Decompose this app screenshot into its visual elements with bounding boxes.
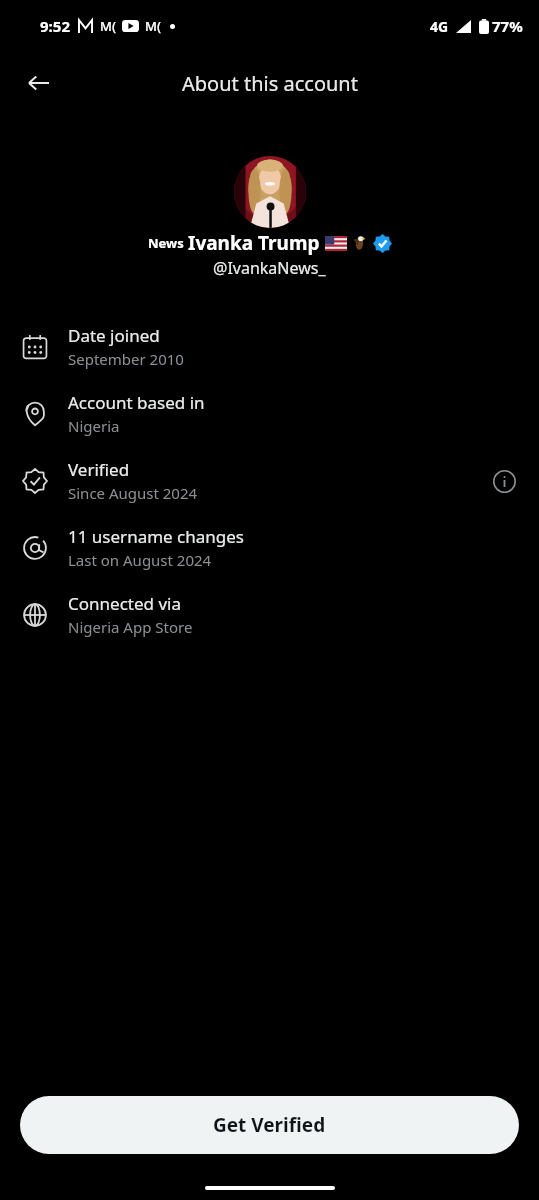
staticText: Account based in: [68, 391, 205, 414]
staticText: M(: [100, 17, 116, 35]
staticText: Nigeria: [68, 416, 120, 436]
button[interactable]: Connected via: [0, 592, 539, 659]
staticText: Get Verified: [213, 1112, 326, 1138]
staticText: 4G: [430, 17, 449, 36]
button[interactable]: Verified: [0, 458, 539, 525]
staticText: News: [148, 234, 184, 252]
staticText: 9:52: [40, 16, 70, 36]
staticText: About this account: [182, 70, 358, 97]
staticText: Connected via: [68, 592, 181, 615]
button[interactable]: Back: [14, 59, 62, 107]
button[interactable]: More info about verification: [487, 464, 521, 498]
button[interactable]: Date joined: [0, 324, 539, 391]
staticText: Since August 2024: [68, 483, 198, 503]
button[interactable]: Get Verified: [20, 1096, 519, 1154]
staticText: M(: [145, 17, 161, 35]
staticText: Nigeria App Store: [68, 617, 193, 637]
button[interactable]: 11 username changes: [0, 525, 539, 592]
staticText: Last on August 2024: [68, 550, 212, 570]
staticText: 77%: [492, 16, 523, 36]
staticText: Ivanka Trump: [188, 230, 320, 256]
button[interactable]: Account based in: [0, 391, 539, 458]
staticText: 11 username changes: [68, 525, 244, 548]
staticText: Verified: [68, 458, 130, 481]
staticText: September 2010: [68, 349, 184, 369]
staticText: Date joined: [68, 324, 160, 347]
staticText: @IvankaNews_: [213, 257, 326, 279]
